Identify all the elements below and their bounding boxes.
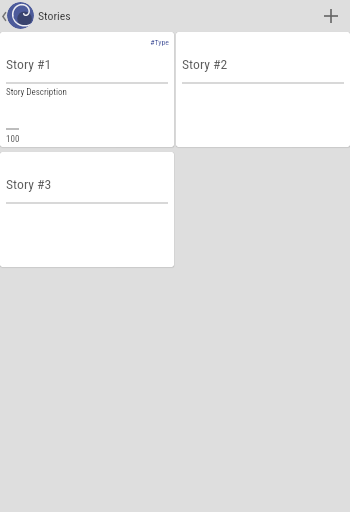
staticText: Story #2	[182, 56, 228, 72]
button[interactable]: Story #3	[0, 152, 174, 267]
staticText: 100	[6, 134, 20, 145]
button[interactable]: #Type	[0, 32, 174, 147]
staticText: Stories	[38, 9, 71, 23]
staticText: Story Description	[6, 87, 67, 98]
button[interactable]: Story #2	[176, 32, 350, 147]
button[interactable]: Navigate up	[0, 0, 34, 32]
staticText: Story #1	[6, 56, 52, 72]
staticText: Story #3	[6, 176, 52, 192]
button[interactable]: Add story	[315, 0, 347, 32]
staticText: #Type	[0, 38, 169, 47]
